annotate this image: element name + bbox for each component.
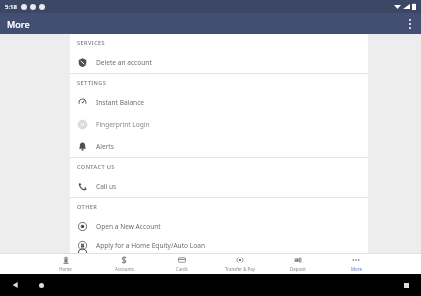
staticText: SETTINGS	[77, 79, 107, 87]
staticText: 5:18	[5, 3, 17, 11]
button[interactable]: Apply for a Home Equity/Auto Loan	[70, 237, 368, 253]
staticText: Home	[59, 266, 72, 272]
staticText: Deposit	[290, 266, 306, 272]
staticText: Cards	[176, 266, 188, 272]
button[interactable]: Call us	[70, 175, 368, 197]
button[interactable]: Home	[36, 253, 95, 274]
staticText: Fingerprint Login	[96, 120, 150, 129]
button[interactable]: Home	[36, 280, 46, 290]
button[interactable]: Recent apps	[401, 280, 411, 290]
staticText: Delete an account	[96, 58, 152, 67]
button[interactable]: Back	[10, 280, 20, 290]
staticText: More	[7, 18, 30, 30]
button[interactable]: Fingerprint Login	[70, 113, 368, 135]
staticText: Accounts	[115, 266, 134, 272]
button[interactable]: Instant Balance	[70, 91, 368, 113]
button[interactable]: Accounts	[95, 253, 153, 274]
staticText: Open a New Account	[96, 222, 161, 231]
button[interactable]: Cards	[153, 253, 211, 274]
staticText: Call us	[96, 182, 117, 191]
button[interactable]: Open a New Account	[70, 215, 368, 237]
staticText: CONTACT US	[77, 163, 115, 171]
button[interactable]: More	[327, 253, 385, 274]
button[interactable]: Transfer & Pay	[211, 253, 269, 274]
staticText: More	[351, 266, 362, 272]
staticText: Instant Balance	[96, 98, 145, 107]
button[interactable]: Deposit	[269, 253, 327, 274]
staticText: Transfer & Pay	[225, 266, 255, 272]
button[interactable]: More options	[399, 13, 421, 34]
staticText: OTHER	[77, 203, 98, 211]
staticText: Alerts	[96, 142, 114, 151]
button[interactable]: Delete an account	[70, 51, 368, 73]
staticText: Apply for a Home Equity/Auto Loan	[96, 241, 205, 250]
staticText: SERVICES	[77, 39, 106, 47]
button[interactable]: Alerts	[70, 135, 368, 157]
